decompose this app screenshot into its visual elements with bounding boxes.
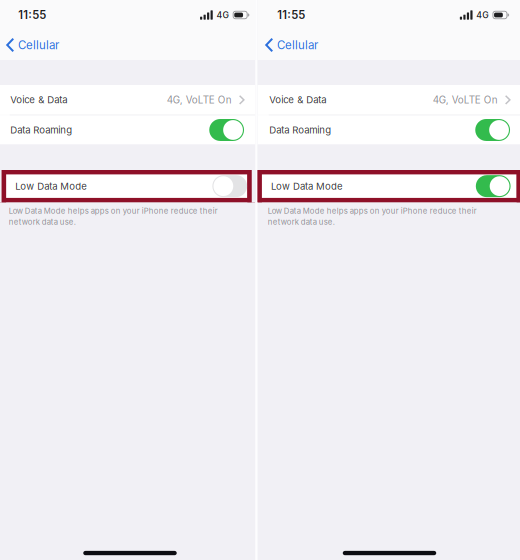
- button[interactable]: Data Roaming: [258, 115, 520, 145]
- button[interactable]: Voice & Data: [258, 85, 520, 115]
- staticText: 4G: [476, 10, 488, 20]
- staticText: Voice & Data: [269, 94, 326, 106]
- staticText: network data use.: [9, 217, 76, 227]
- button[interactable]: Low Data Mode: [262, 174, 517, 198]
- staticText: Low Data Mode helps apps on your iPhone …: [268, 206, 477, 216]
- button[interactable]: Data Roaming: [0, 115, 255, 145]
- staticText: Cellular: [18, 38, 59, 52]
- staticText: Data Roaming: [269, 124, 331, 136]
- button[interactable]: Cellular: [258, 30, 326, 60]
- staticText: Cellular: [277, 38, 318, 52]
- staticText: Voice & Data: [10, 94, 67, 106]
- staticText: 4G, VoLTE On: [433, 94, 498, 106]
- staticText: 11:55: [18, 8, 46, 22]
- button[interactable]: Voice & Data: [0, 85, 255, 115]
- button[interactable]: Cellular: [0, 30, 67, 60]
- staticText: 4G, VoLTE On: [167, 94, 232, 106]
- staticText: Low Data Mode: [271, 180, 343, 192]
- button[interactable]: Low Data Mode: [6, 174, 247, 198]
- staticText: 11:55: [277, 8, 305, 22]
- staticText: Low Data Mode: [15, 180, 87, 192]
- staticText: Low Data Mode helps apps on your iPhone …: [9, 206, 218, 216]
- staticText: 4G: [217, 10, 229, 20]
- staticText: network data use.: [268, 217, 335, 227]
- staticText: Data Roaming: [10, 124, 72, 136]
